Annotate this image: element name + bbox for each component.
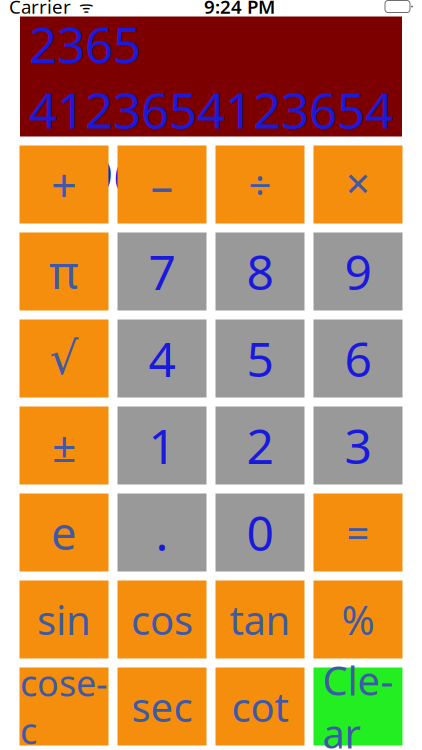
button[interactable]: ÷ xyxy=(215,145,304,223)
button[interactable]: tan xyxy=(215,580,304,658)
staticText: 9 xyxy=(344,240,371,303)
staticText: e xyxy=(51,502,77,563)
staticText: Carrier xyxy=(9,0,71,19)
staticText: . xyxy=(155,501,168,564)
button[interactable]: 6 xyxy=(313,319,402,397)
staticText: 3 xyxy=(344,414,371,477)
staticText: ÷ xyxy=(248,158,271,211)
button[interactable]: √ xyxy=(19,319,108,397)
staticText: % xyxy=(341,593,374,646)
staticText: 7 xyxy=(148,240,175,303)
button[interactable]: cos xyxy=(117,580,206,658)
button[interactable]: 3 xyxy=(313,406,402,484)
staticText: Clear xyxy=(322,653,393,750)
button[interactable]: + xyxy=(19,145,108,223)
button[interactable]: ± xyxy=(19,406,108,484)
staticText: tan xyxy=(229,593,290,646)
staticText: 6 xyxy=(344,327,371,390)
button[interactable]: 2 xyxy=(215,406,304,484)
button[interactable]: 1 xyxy=(117,406,206,484)
staticText: 41236541236547896 5 xyxy=(29,76,393,207)
staticText: ± xyxy=(52,417,76,474)
staticText: 4 xyxy=(148,327,175,390)
staticText: √ xyxy=(49,333,78,384)
staticText: cot xyxy=(231,680,288,733)
staticText: sin xyxy=(37,593,91,646)
button[interactable]: e xyxy=(19,493,108,571)
button[interactable]: – xyxy=(117,145,206,223)
button[interactable]: cosec xyxy=(19,667,108,745)
staticText: cos xyxy=(131,593,193,646)
button[interactable]: 7 xyxy=(117,232,206,310)
staticText: 5 xyxy=(246,327,273,390)
staticText: cosec xyxy=(20,659,108,750)
button[interactable]: 5 xyxy=(215,319,304,397)
staticText: – xyxy=(150,154,173,215)
button[interactable]: 4 xyxy=(117,319,206,397)
button[interactable]: sec xyxy=(117,667,206,745)
button[interactable]: 0 xyxy=(215,493,304,571)
staticText: π xyxy=(49,241,79,302)
staticText: ᯤ xyxy=(71,0,94,17)
button[interactable]: 8 xyxy=(215,232,304,310)
staticText: 2 xyxy=(246,414,273,477)
button[interactable]: % xyxy=(313,580,402,658)
staticText: 78478965489652365 xyxy=(29,0,393,76)
staticText: 9:24 PM xyxy=(204,0,275,19)
button[interactable]: 9 xyxy=(313,232,402,310)
button[interactable]: = xyxy=(313,493,402,571)
staticText: 8 xyxy=(246,240,273,303)
button[interactable]: . xyxy=(117,493,206,571)
staticText: 0 xyxy=(246,501,273,564)
staticText: sec xyxy=(131,680,192,733)
staticText: + xyxy=(51,154,77,215)
button[interactable]: π xyxy=(19,232,108,310)
button[interactable]: sin xyxy=(19,580,108,658)
staticText: 1 xyxy=(148,414,175,477)
staticText: ✕ xyxy=(344,166,371,203)
button[interactable]: cot xyxy=(215,667,304,745)
button[interactable]: Clear xyxy=(313,667,402,745)
button[interactable]: ✕ xyxy=(313,145,402,223)
staticText: = xyxy=(346,506,369,559)
